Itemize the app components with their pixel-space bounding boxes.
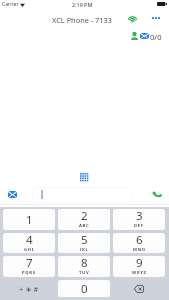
staticText: 0 <box>81 281 88 297</box>
staticText: MNO <box>133 247 146 251</box>
staticText: 7 <box>26 256 33 271</box>
staticText: 2 <box>81 209 88 224</box>
staticText: + ∗ # <box>19 284 39 294</box>
staticText: WXYZ <box>132 270 147 275</box>
button[interactable]: Send message <box>4 187 20 201</box>
button[interactable]: 0 <box>58 280 110 297</box>
button[interactable]: 1 <box>3 209 55 230</box>
staticText: JKL <box>80 247 89 251</box>
button[interactable]: 8 <box>58 256 110 277</box>
staticText: GHI <box>24 247 34 251</box>
staticText: 1 <box>26 212 33 228</box>
button[interactable]: 4 <box>3 233 55 253</box>
button[interactable]: 6 <box>113 233 165 253</box>
button[interactable]: Contacts <box>129 29 140 42</box>
button[interactable]: 5 <box>58 233 110 253</box>
button[interactable]: Dialpad <box>76 168 92 184</box>
staticText: TUV <box>79 270 90 275</box>
button[interactable]: 2 <box>58 209 110 230</box>
button[interactable]: Connection status <box>125 11 140 24</box>
staticText: 4 <box>26 233 33 248</box>
staticText: ABC <box>79 223 90 228</box>
staticText: 8 <box>81 256 88 271</box>
button[interactable]: Backspace <box>113 280 165 297</box>
button[interactable]: More options <box>148 11 164 24</box>
staticText: PQRS <box>22 270 36 275</box>
button[interactable]: Call <box>149 186 164 201</box>
staticText: Carrier <box>2 1 19 8</box>
button[interactable]: Messages <box>139 29 150 42</box>
staticText: 2:19 PM <box>72 1 93 8</box>
staticText: 3 <box>136 209 143 224</box>
staticText: 0/0 <box>150 32 162 42</box>
button[interactable]: 7 <box>3 256 55 277</box>
staticText: 5 <box>81 233 88 248</box>
staticText: 9 <box>136 256 143 271</box>
staticText: XCL Phone - 7133 <box>52 15 113 25</box>
staticText: 6 <box>136 233 143 248</box>
button[interactable] <box>32 187 132 203</box>
button[interactable]: 3 <box>113 209 165 230</box>
staticText: DEF <box>134 223 144 228</box>
button[interactable]: + ∗ # <box>3 280 55 297</box>
button[interactable]: 9 <box>113 256 165 277</box>
